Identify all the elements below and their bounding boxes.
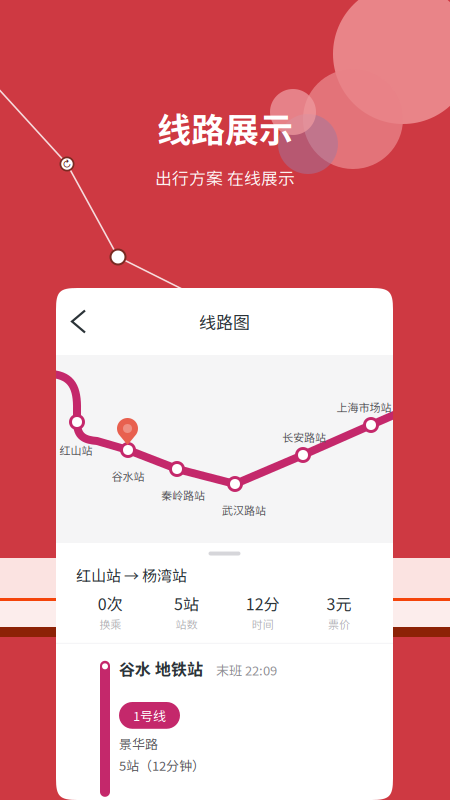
staticText: 出行方案 在线展示 — [155, 165, 295, 190]
staticText: 0次 — [98, 592, 123, 615]
staticText: 秦岭路站 — [161, 487, 205, 503]
staticText: ↻ — [62, 158, 71, 170]
staticText: 末班 22:09 — [216, 660, 277, 679]
staticText: 票价 — [328, 616, 350, 632]
staticText: 换乘 — [99, 616, 121, 632]
staticText: 谷水站 — [111, 468, 144, 484]
staticText: 线路展示 — [157, 103, 293, 152]
staticText: 3元 — [326, 592, 351, 615]
button[interactable]: Back — [56, 298, 102, 344]
staticText: 景华路 — [119, 734, 158, 753]
staticText: 长安路站 — [282, 429, 326, 445]
staticText: 红山站 — [59, 442, 92, 458]
staticText: 红山站 → 杨湾站 — [76, 564, 187, 586]
staticText: 武汉路站 — [222, 502, 266, 518]
staticText: 线路图 — [199, 309, 250, 334]
staticText: 1号线 — [133, 706, 166, 725]
staticText: 时间 — [252, 616, 274, 632]
staticText: 上海市场站 — [336, 399, 391, 415]
staticText: 谷水 地铁站 — [119, 657, 203, 680]
staticText: 站数 — [175, 616, 197, 632]
staticText: 5站（12分钟） — [119, 756, 205, 774]
staticText: 5站 — [174, 592, 199, 615]
staticText: 12分 — [246, 592, 280, 615]
